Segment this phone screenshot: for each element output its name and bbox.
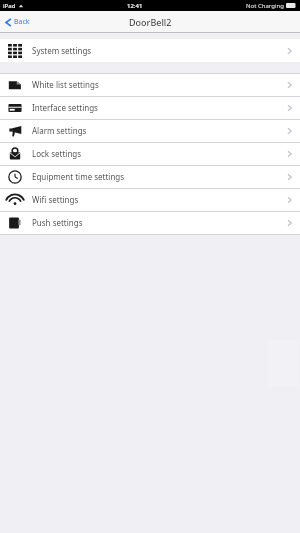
button[interactable]: Wifi settings [0,188,300,211]
button[interactable]: System settings [0,39,300,62]
button[interactable]: Lock settings [0,142,300,165]
staticText: System settings [32,45,92,56]
staticText: Interface settings [32,102,98,113]
staticText: White list settings [32,79,99,90]
button[interactable]: Back [3,14,32,30]
button[interactable]: Alarm settings [0,119,300,142]
staticText: iPad [3,2,16,10]
staticText: Wifi settings [32,194,79,205]
staticText: Alarm settings [32,125,87,136]
staticText: Lock settings [32,148,82,159]
button[interactable]: Push settings [0,211,300,234]
staticText: Equipment time settings [32,171,125,182]
staticText: 12:41 [127,2,143,10]
staticText: Not Charging [246,2,284,10]
staticText: Push settings [32,217,83,228]
button[interactable]: Equipment time settings [0,165,300,188]
button[interactable]: Interface settings [0,96,300,119]
staticText: DoorBell2 [129,16,172,28]
button[interactable]: White list settings [0,73,300,96]
staticText: Back [14,17,30,27]
